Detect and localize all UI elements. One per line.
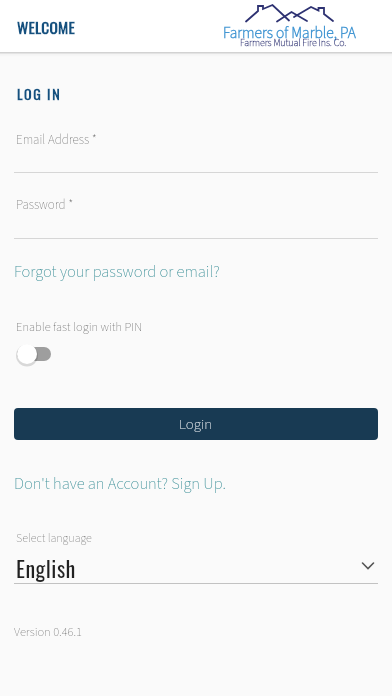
staticText: Farmers of Marble, PA — [223, 22, 356, 44]
staticText: LOG IN — [17, 83, 62, 104]
staticText: Farmers Mutual Fire Ins. Co. — [240, 36, 347, 50]
staticText: Enable fast login with PIN — [16, 318, 143, 336]
button[interactable]: Login — [14, 408, 378, 440]
staticText: Password * — [16, 196, 74, 215]
staticText: WELCOME — [17, 16, 75, 39]
button[interactable] — [12, 339, 56, 369]
staticText: Version 0.46.1 — [14, 623, 82, 641]
staticText: Email Address * — [16, 131, 97, 150]
button[interactable]: Don't have an Account? Sign Up. — [0, 0, 212, 23]
staticText: Login — [179, 414, 213, 435]
staticText: English — [16, 552, 76, 585]
staticText: Select language — [16, 530, 92, 547]
button[interactable]: English — [0, 550, 392, 584]
button[interactable]: Forgot your password or email? — [0, 0, 206, 23]
